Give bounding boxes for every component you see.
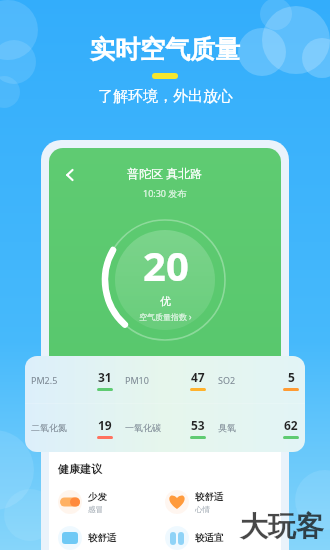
button[interactable]: 少发 bbox=[58, 490, 165, 514]
staticText: 实时空气质量 bbox=[90, 34, 240, 65]
staticText: 47 bbox=[191, 369, 205, 385]
button[interactable]: SO2 bbox=[212, 356, 305, 403]
staticText: 10:30 发布 bbox=[143, 187, 187, 199]
staticText: 普陀区 真北路 bbox=[127, 165, 203, 181]
staticText: 心情 bbox=[195, 505, 210, 514]
staticText: 感冒 bbox=[88, 505, 103, 514]
staticText: 少发 bbox=[88, 491, 107, 503]
button[interactable]: 较舒适 bbox=[58, 526, 165, 550]
button[interactable]: 二氧化氮 bbox=[25, 404, 119, 451]
button[interactable]: PM10 bbox=[119, 356, 212, 403]
staticText: 53 bbox=[191, 417, 205, 433]
staticText: 较舒适 bbox=[195, 491, 224, 503]
staticText: 空气质量指数 › bbox=[139, 311, 192, 322]
staticText: 19 bbox=[98, 417, 112, 433]
staticText: 20 bbox=[143, 238, 189, 292]
button[interactable]: 一氧化碳 bbox=[119, 404, 212, 451]
staticText: 二氧化氮 bbox=[31, 422, 67, 433]
staticText: 臭氧 bbox=[218, 422, 236, 433]
button[interactable]: 臭氧 bbox=[212, 404, 305, 451]
button[interactable]: PM2.5 bbox=[25, 356, 119, 403]
staticText: SO2 bbox=[218, 374, 236, 386]
staticText: PM2.5 bbox=[31, 374, 58, 386]
button[interactable]: 20 bbox=[103, 218, 227, 342]
button[interactable]: 较舒适 bbox=[165, 490, 272, 514]
staticText: 31 bbox=[98, 369, 112, 385]
button[interactable]: 较适宜 bbox=[165, 526, 272, 550]
staticText: 大玩客 bbox=[240, 509, 324, 544]
staticText: 62 bbox=[284, 417, 298, 433]
staticText: PM10 bbox=[125, 374, 149, 386]
staticText: 一氧化碳 bbox=[125, 422, 161, 433]
staticText: 健康建议 bbox=[58, 462, 102, 476]
staticText: 较舒适 bbox=[88, 532, 117, 544]
staticText: 了解环境，外出放心 bbox=[98, 87, 233, 106]
staticText: 优 bbox=[160, 294, 171, 308]
staticText: 5 bbox=[288, 369, 295, 385]
button[interactable]: Back bbox=[57, 162, 83, 188]
staticText: 较适宜 bbox=[195, 532, 224, 544]
